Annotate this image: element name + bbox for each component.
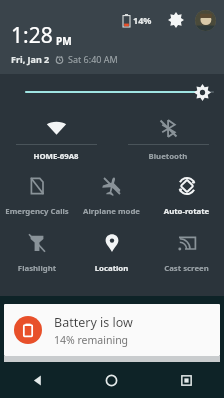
button[interactable]: Brightness: [0, 74, 224, 110]
button[interactable]: Battery is low: [4, 304, 220, 356]
button[interactable]: HOME-69A8: [0, 110, 112, 167]
button[interactable]: Cast screen: [149, 224, 224, 281]
staticText: Auto-rotate: [149, 206, 224, 217]
button[interactable]: Emergency Calls Only: [0, 167, 74, 224]
button[interactable]: Location: [74, 224, 149, 281]
staticText: Emergency Calls Only: [0, 206, 74, 217]
staticText: Airplane mode: [74, 206, 149, 217]
button[interactable]: Bluetooth: [112, 110, 224, 167]
staticText: 14% remaining: [54, 333, 129, 347]
button[interactable]: User profile: [195, 10, 216, 31]
staticText: Cast screen: [149, 263, 224, 274]
staticText: 14%: [133, 14, 152, 26]
button[interactable]: Settings: [165, 9, 187, 31]
staticText: HOME-69A8: [0, 151, 112, 162]
button[interactable]: Home: [74, 362, 149, 398]
staticText: Location: [74, 263, 149, 274]
staticText: Sat 6:40 AM: [68, 53, 118, 65]
button[interactable]: Back: [0, 362, 74, 398]
staticText: Bluetooth: [112, 151, 224, 162]
button[interactable]: Auto-rotate: [149, 167, 224, 224]
staticText: Battery is low: [54, 314, 133, 331]
staticText: Flashlight: [0, 263, 74, 274]
button[interactable]: Airplane mode: [74, 167, 149, 224]
staticText: PM: [56, 34, 72, 48]
staticText: Fri, Jan 2: [11, 53, 50, 65]
button[interactable]: Flashlight: [0, 224, 74, 281]
button[interactable]: Recents: [149, 362, 224, 398]
staticText: 1:28: [11, 21, 53, 50]
